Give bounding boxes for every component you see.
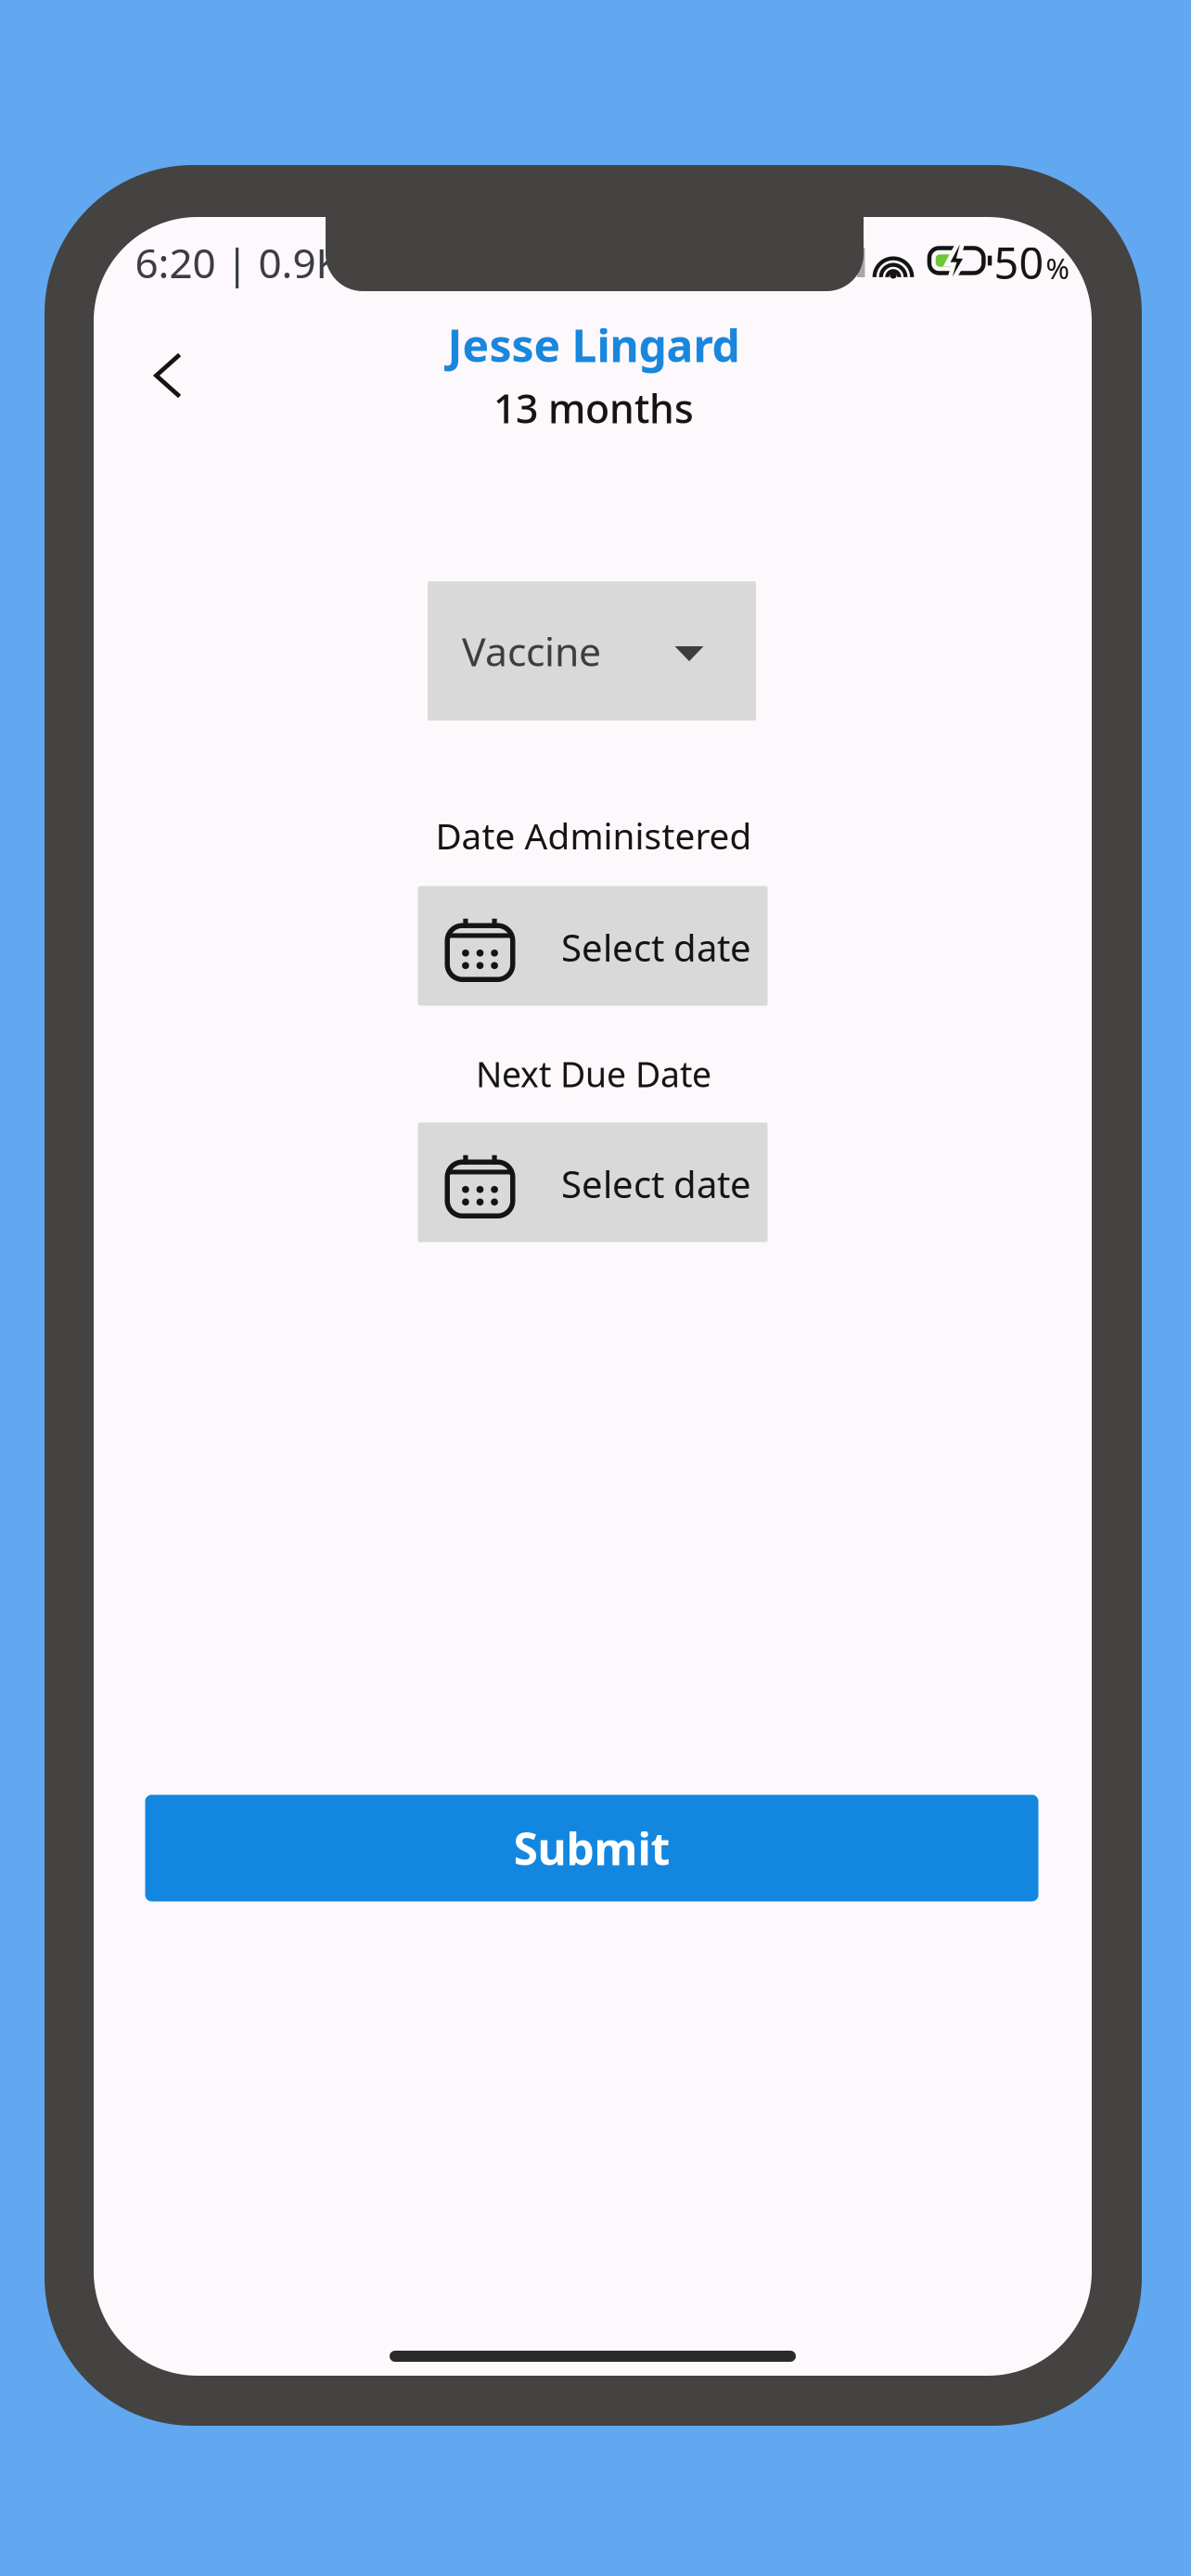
button[interactable]: Submit [145,1795,1038,1901]
button[interactable]: Select date [418,1122,768,1242]
staticText: Select date [561,1159,751,1208]
staticText: Jesse Lingard [448,315,740,374]
staticText: 6:20 | 0.9KB/ [135,235,383,289]
staticText: Next Due Date [476,1051,711,1097]
staticText: % [1046,249,1069,287]
button[interactable]: Vaccine [428,581,756,721]
staticText: Submit [513,1819,670,1878]
staticText: Select date [561,923,751,972]
button[interactable]: Select date [418,886,768,1006]
staticText: Vaccine [462,625,601,677]
staticText: 50 [994,234,1044,291]
staticText: Date Administered [435,812,752,859]
staticText: 13 months [493,382,694,434]
button[interactable]: Back [117,325,219,427]
